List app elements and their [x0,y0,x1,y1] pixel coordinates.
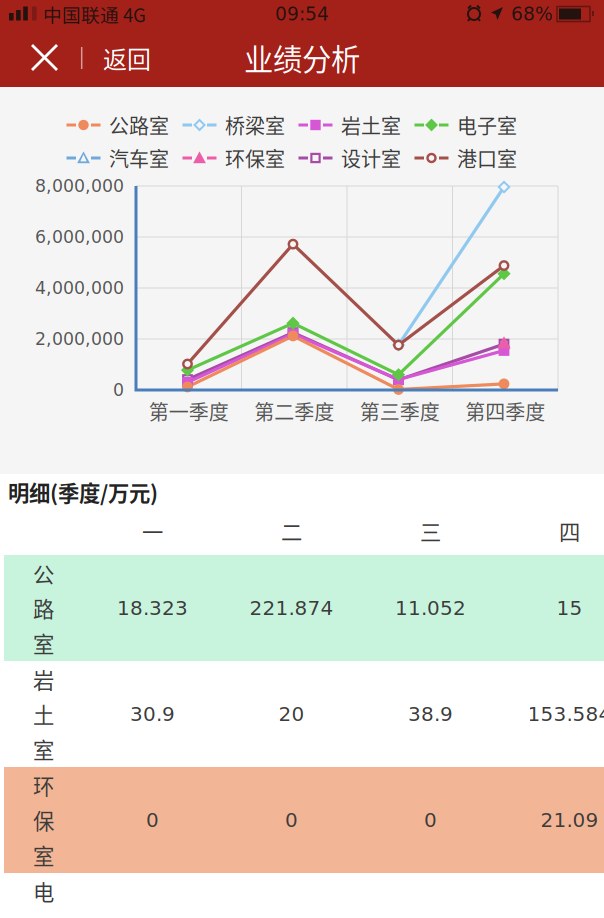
staticText: 18.323 [117,596,188,620]
staticText: 岩土室 [341,110,401,139]
staticText: 30.9 [130,702,175,726]
staticText: 业绩分析 [244,36,360,79]
staticText: 09:54 [275,3,329,25]
staticText: 公路室 [109,110,169,139]
staticText: 土 [33,699,54,729]
staticText: 中国联通 4G [43,0,146,27]
staticText: 室 [33,839,54,870]
staticText: 环保室 [225,143,285,172]
staticText: 电子室 [457,110,517,139]
staticText: 38.9 [408,702,453,726]
staticText: 第二季度 [254,396,334,425]
staticText: 明细(季度/万元) [8,477,158,507]
staticText: 221.874 [249,596,333,620]
staticText: 汽车室 [109,143,169,172]
staticText: 公 [33,558,54,589]
staticText: 2,000,000 [35,329,124,349]
staticText: 保 [33,805,54,835]
staticText: 返回 [103,41,151,75]
staticText: 第三季度 [360,396,440,425]
staticText: 室 [33,627,54,658]
staticText: 环 [33,770,54,801]
staticText: 设计室 [341,143,401,172]
staticText: 一 [142,516,163,546]
staticText: 二 [281,516,302,546]
button[interactable]: 返回 [103,38,155,78]
staticText: 20 [278,702,304,726]
staticText: 4,000,000 [35,278,124,298]
staticText: 四 [559,516,580,546]
staticText: 68% [511,3,553,25]
staticText: 路 [33,593,54,623]
staticText: 三 [420,516,441,546]
staticText: 21.09 [540,808,598,832]
button[interactable]: Close [26,39,63,76]
staticText: 第四季度 [465,396,545,425]
staticText: 第一季度 [149,396,229,425]
staticText: 0 [113,380,124,400]
staticText: 153.584 [527,702,604,726]
staticText: 0 [146,808,159,832]
staticText: 8,000,000 [35,176,124,196]
staticText: 6,000,000 [35,227,124,247]
staticText: 电 [33,876,54,907]
staticText: 桥梁室 [225,110,285,139]
staticText: 室 [33,733,54,764]
staticText: 岩 [33,664,54,695]
staticText: 0 [285,808,298,832]
staticText: 0 [424,808,437,832]
staticText: 15 [556,596,582,620]
staticText: 港口室 [457,143,517,172]
staticText: 11.052 [395,596,466,620]
